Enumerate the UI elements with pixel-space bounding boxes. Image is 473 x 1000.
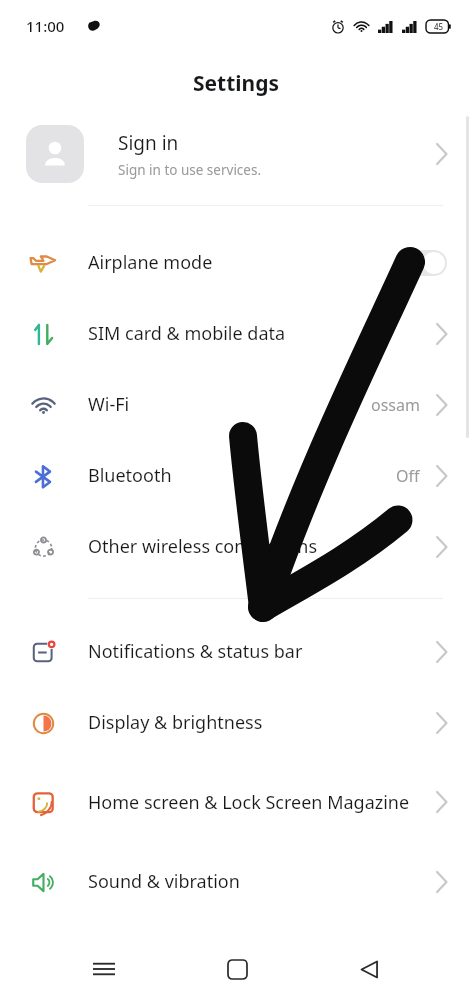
staticText: Wi-Fi <box>88 392 130 417</box>
button[interactable]: Bluetooth <box>0 440 473 511</box>
button[interactable]: Home <box>209 941 265 997</box>
staticText: 11:00 <box>26 16 65 36</box>
staticText: Sign in to use services. <box>118 161 262 179</box>
staticText: Display & brightness <box>88 710 263 735</box>
staticText: Home screen & Lock Screen Magazine <box>88 790 410 815</box>
staticText: Settings <box>193 69 280 98</box>
button[interactable]: Wi-Fi <box>0 369 473 440</box>
staticText: SIM card & mobile data <box>88 321 286 346</box>
button[interactable]: Airplane mode toggle <box>401 250 447 276</box>
staticText: Sound & vibration <box>88 869 240 894</box>
button[interactable]: Sign in <box>0 114 473 194</box>
staticText: 45 <box>434 21 444 32</box>
button[interactable]: Notifications & status bar <box>0 616 473 687</box>
staticText: Bluetooth <box>88 463 172 488</box>
button[interactable]: Back <box>341 941 397 997</box>
button[interactable]: Airplane mode <box>0 227 473 298</box>
button[interactable]: Sound & vibration <box>0 846 473 917</box>
button[interactable]: Recent apps <box>76 941 132 997</box>
staticText: Sign in <box>118 130 179 156</box>
button[interactable]: Home screen & Lock Screen Magazine <box>0 758 473 846</box>
staticText: Off <box>396 465 420 487</box>
staticText: ossam <box>371 394 420 416</box>
button[interactable]: Other wireless connections <box>0 511 473 582</box>
staticText: Other wireless connections <box>88 534 318 559</box>
button[interactable]: SIM card & mobile data <box>0 298 473 369</box>
staticText: Notifications & status bar <box>88 639 303 664</box>
button[interactable]: Display & brightness <box>0 687 473 758</box>
staticText: Airplane mode <box>88 250 213 275</box>
